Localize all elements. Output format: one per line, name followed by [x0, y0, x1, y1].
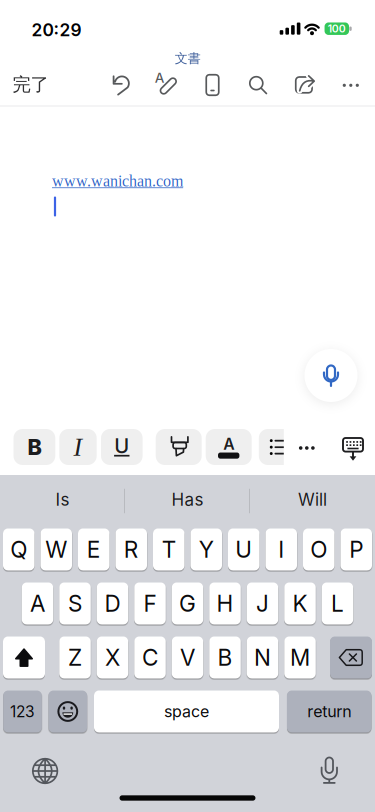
staticText: 20:29 — [31, 19, 81, 40]
button[interactable]: space — [94, 690, 279, 732]
button[interactable]: D — [97, 582, 128, 624]
staticText: F — [143, 590, 156, 617]
button[interactable]: I — [265, 528, 297, 570]
button[interactable]: Has — [132, 479, 242, 519]
button[interactable]: P — [340, 528, 372, 570]
button[interactable]: J — [247, 582, 278, 624]
button[interactable]: M — [284, 636, 316, 678]
staticText: Will — [298, 489, 327, 510]
staticText: space — [164, 702, 209, 721]
staticText: Z — [68, 644, 82, 671]
staticText: X — [105, 644, 120, 671]
button[interactable]: A — [147, 63, 187, 105]
staticText: A — [223, 434, 234, 453]
staticText: B — [217, 644, 232, 671]
staticText: C — [142, 644, 158, 671]
button[interactable] — [156, 429, 202, 465]
staticText: A — [155, 70, 165, 86]
button[interactable]: K — [284, 582, 316, 624]
button[interactable]: Will — [257, 479, 367, 519]
button[interactable]: L — [322, 582, 353, 624]
button[interactable] — [100, 63, 140, 105]
staticText: R — [124, 536, 139, 563]
button[interactable]: R — [115, 528, 147, 570]
button[interactable] — [48, 690, 87, 732]
button[interactable] — [3, 636, 45, 678]
button[interactable]: return — [287, 690, 371, 732]
staticText: I — [73, 433, 82, 461]
button[interactable] — [284, 64, 324, 106]
staticText: L — [331, 590, 344, 617]
button[interactable] — [192, 64, 232, 106]
staticText: P — [349, 536, 363, 563]
button[interactable]: W — [40, 528, 72, 570]
staticText: G — [179, 590, 196, 617]
button[interactable] — [23, 749, 67, 793]
button[interactable] — [330, 636, 372, 678]
button[interactable]: V — [172, 636, 203, 678]
staticText: A — [30, 590, 45, 617]
staticText: Q — [10, 536, 27, 563]
button[interactable]: B — [13, 429, 55, 465]
button[interactable]: B — [209, 636, 241, 678]
staticText: V — [180, 644, 195, 671]
button[interactable]: I — [59, 429, 97, 465]
button[interactable] — [259, 429, 305, 465]
button[interactable]: 完了 — [8, 69, 52, 99]
staticText: B — [27, 434, 41, 460]
button[interactable]: U — [101, 429, 143, 465]
button[interactable]: S — [59, 582, 91, 624]
staticText: 文書 — [175, 50, 201, 67]
staticText: 完了 — [12, 73, 48, 96]
button[interactable]: A — [22, 582, 53, 624]
button[interactable]: Is — [7, 479, 117, 519]
button[interactable] — [336, 432, 370, 468]
button[interactable] — [333, 64, 369, 106]
staticText: N — [254, 644, 271, 671]
button[interactable]: 123 — [3, 690, 42, 732]
button[interactable]: Q — [3, 528, 34, 570]
staticText: S — [68, 590, 82, 617]
button[interactable]: Z — [59, 636, 91, 678]
staticText: W — [45, 536, 67, 563]
button[interactable]: A — [206, 429, 252, 465]
button[interactable]: G — [172, 582, 203, 624]
staticText: H — [216, 590, 233, 617]
button[interactable]: F — [134, 582, 166, 624]
button[interactable] — [291, 430, 323, 466]
button[interactable]: X — [97, 636, 128, 678]
staticText: J — [256, 590, 269, 617]
button[interactable]: U — [228, 528, 259, 570]
staticText: Is — [55, 489, 69, 510]
staticText: M — [290, 644, 310, 671]
button[interactable]: T — [153, 528, 184, 570]
staticText: D — [104, 590, 120, 617]
staticText: return — [307, 702, 351, 721]
staticText: K — [292, 590, 307, 617]
staticText: U — [114, 434, 129, 458]
button[interactable] — [304, 349, 357, 402]
button[interactable]: E — [78, 528, 109, 570]
button[interactable]: C — [134, 636, 166, 678]
staticText: 123 — [10, 702, 35, 721]
button[interactable]: O — [303, 528, 334, 570]
staticText: T — [162, 536, 176, 563]
button[interactable] — [237, 64, 277, 106]
button[interactable]: H — [209, 582, 241, 624]
staticText: Has — [171, 489, 203, 510]
staticText: I — [278, 536, 284, 563]
staticText: E — [87, 536, 101, 563]
staticText: www.wanichan.com — [52, 172, 183, 190]
button[interactable]: Y — [190, 528, 222, 570]
staticText: Y — [199, 536, 214, 563]
staticText: U — [235, 536, 252, 563]
button[interactable] — [307, 746, 351, 790]
button[interactable]: N — [247, 636, 278, 678]
staticText: O — [310, 536, 327, 563]
staticText: 100 — [328, 22, 346, 35]
